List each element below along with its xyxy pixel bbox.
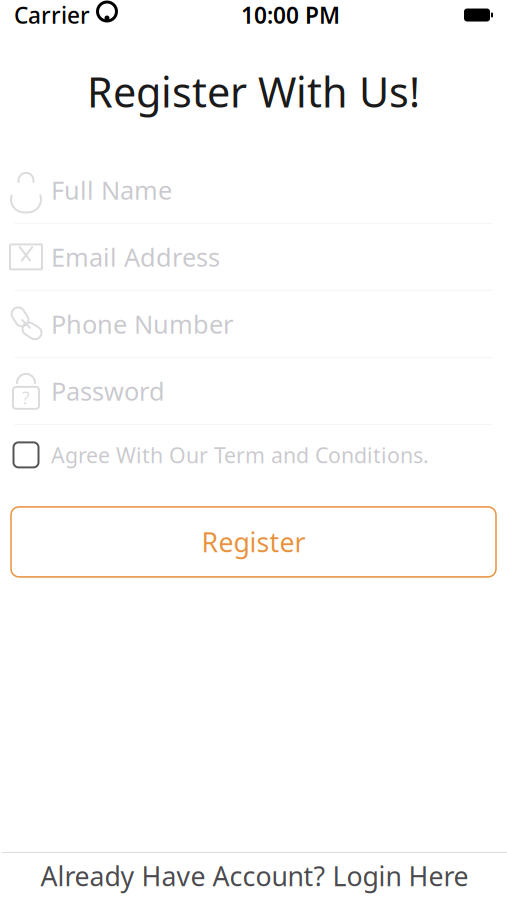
button[interactable]: Agree With Our Term and Conditions. [0, 425, 507, 485]
button[interactable]: ? [0, 358, 507, 425]
button[interactable]: Phone Number [0, 291, 507, 358]
button[interactable]: Full Name [0, 157, 507, 224]
button[interactable]: Register [11, 507, 496, 577]
button[interactable]: Already Have Account? Login Here [2, 852, 507, 900]
staticText: Email Address [51, 240, 220, 274]
staticText: Full Name [51, 173, 172, 207]
staticText: Register [201, 524, 305, 560]
staticText: Carrier [14, 0, 90, 30]
staticText: Register With Us! [87, 64, 420, 119]
staticText: Agree With Our Term and Conditions. [51, 441, 429, 469]
staticText: Already Have Account? Login Here [40, 858, 468, 894]
staticText: Phone Number [51, 307, 233, 341]
button[interactable]: Email Address [0, 224, 507, 291]
staticText: 10:00 PM [241, 0, 340, 30]
staticText: ? [22, 386, 30, 409]
staticText: Password [51, 374, 165, 408]
